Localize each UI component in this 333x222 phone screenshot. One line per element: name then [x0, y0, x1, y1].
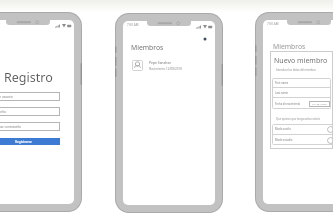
button[interactable]: 12 / 08 / 2018: [309, 101, 330, 107]
button[interactable]: More options: [201, 35, 208, 42]
button[interactable]: Modo estudio: [275, 135, 333, 145]
staticText: Pepe Sanchez: [149, 60, 171, 65]
staticText: 7:50 AM: [127, 23, 139, 27]
staticText: Confirmar contraseña: [0, 125, 21, 129]
button[interactable]: Modo sueño: [275, 124, 333, 134]
staticText: Registro: [4, 69, 53, 86]
staticText: Nombre usuario: [0, 95, 13, 99]
staticText: Nacimiento 12/08/2018: [149, 67, 182, 71]
button[interactable]: Confirmar contraseña: [0, 122, 60, 131]
staticText: Miembros: [273, 42, 306, 51]
staticText: Contraseña: [0, 110, 6, 114]
button[interactable]: Last name: [272, 88, 331, 98]
staticText: Fecha de nacimiento: [275, 102, 301, 106]
staticText: Last name: [275, 91, 289, 95]
staticText: Miembros: [131, 43, 164, 52]
staticText: Modo sueño: [275, 127, 291, 131]
button[interactable]: Pepe Sanchez: [132, 60, 206, 71]
staticText: 7:50 AM: [267, 22, 279, 26]
staticText: Nuevo miembro: [274, 56, 328, 66]
staticText: First name: [275, 81, 289, 85]
staticText: 12 / 08 / 2018: [312, 103, 327, 106]
button[interactable]: Registrarse: [0, 138, 60, 145]
staticText: Registrarse: [15, 140, 32, 144]
staticText: Modo estudio: [275, 138, 293, 142]
button[interactable]: First name: [272, 78, 331, 88]
staticText: Introduce los datos del miembro: [276, 68, 316, 72]
button[interactable]: Contraseña: [0, 107, 60, 116]
staticText: Que quieres que tenga activo este/a: [276, 117, 320, 121]
button[interactable]: Nombre usuario: [0, 92, 60, 101]
